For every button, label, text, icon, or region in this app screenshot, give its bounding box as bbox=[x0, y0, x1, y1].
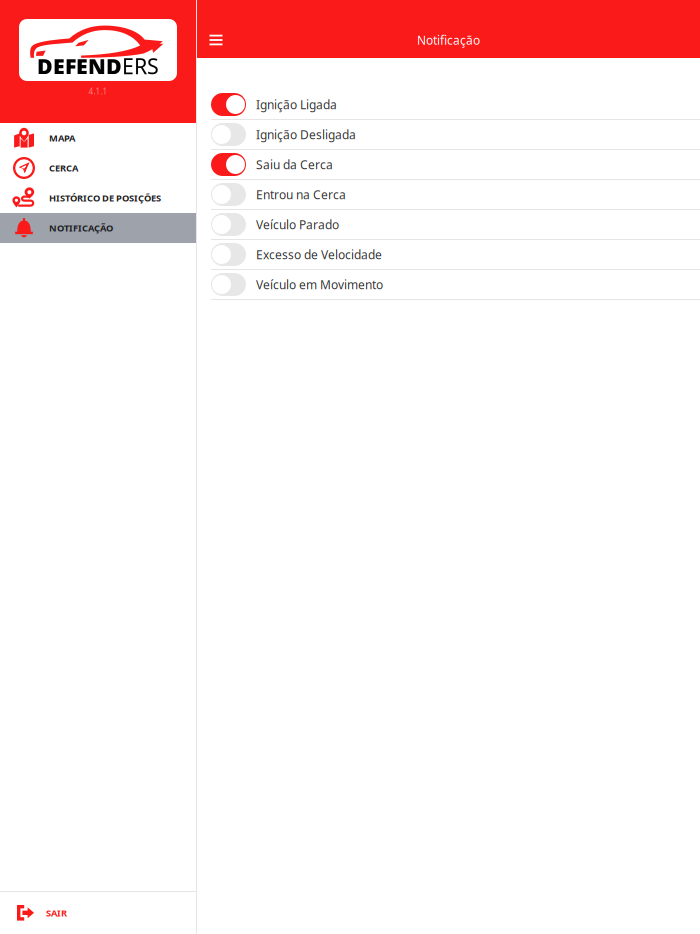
staticText: NOTIFICAÇÃO bbox=[49, 222, 113, 234]
button[interactable]: Saiu da Cerca bbox=[197, 150, 700, 180]
button[interactable]: Ignição Ligada bbox=[197, 90, 700, 120]
button[interactable]: SAIR bbox=[0, 892, 196, 934]
button[interactable]: Veículo em Movimento bbox=[197, 270, 700, 300]
staticText: ERS bbox=[122, 52, 159, 80]
button[interactable]: Entrou na Cerca bbox=[197, 180, 700, 210]
button[interactable]: CERCA bbox=[0, 153, 196, 183]
staticText: SAIR bbox=[46, 907, 67, 919]
button[interactable]: Excesso de Velocidade bbox=[197, 240, 700, 270]
staticText: Veículo Parado bbox=[256, 216, 339, 232]
button[interactable]: MAPA bbox=[0, 123, 196, 153]
staticText: MAPA bbox=[49, 132, 75, 144]
staticText: 4.1.1 bbox=[88, 86, 107, 97]
staticText: Notificação bbox=[417, 32, 480, 48]
staticText: HISTÓRICO DE POSIÇÕES bbox=[49, 192, 161, 204]
staticText: Veículo em Movimento bbox=[256, 276, 383, 292]
button[interactable]: Veículo Parado bbox=[197, 210, 700, 240]
staticText: DEFEND bbox=[37, 52, 122, 80]
button[interactable]: NOTIFICAÇÃO bbox=[0, 213, 196, 243]
staticText: Ignição Ligada bbox=[256, 96, 337, 112]
staticText: Entrou na Cerca bbox=[256, 186, 346, 202]
staticText: Excesso de Velocidade bbox=[256, 246, 382, 262]
staticText: Saiu da Cerca bbox=[256, 156, 333, 172]
button[interactable]: Ignição Desligada bbox=[197, 120, 700, 150]
staticText: CERCA bbox=[49, 162, 78, 174]
staticText: Ignição Desligada bbox=[256, 126, 356, 142]
button[interactable]: Menu bbox=[204, 28, 228, 52]
button[interactable]: HISTÓRICO DE POSIÇÕES bbox=[0, 183, 196, 213]
